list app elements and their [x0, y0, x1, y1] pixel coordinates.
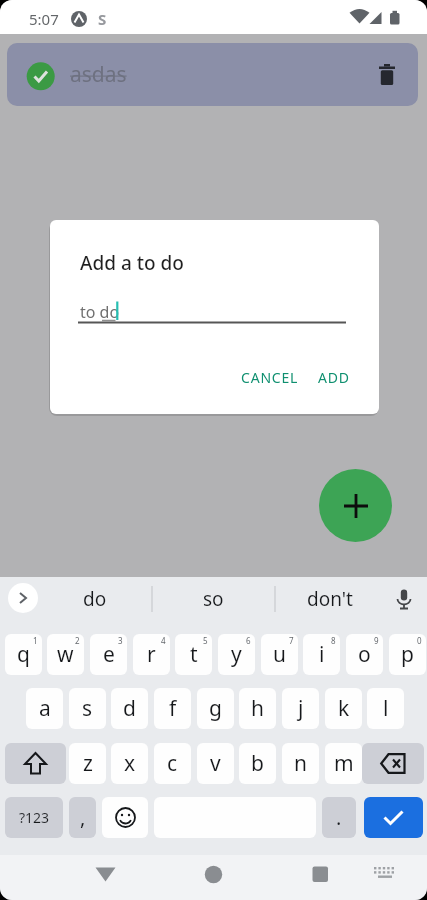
staticText: .: [336, 804, 342, 831]
button[interactable]: asdas: [7, 43, 418, 106]
staticText: 7: [289, 635, 294, 646]
staticText: t: [190, 640, 198, 669]
button[interactable]: r: [133, 634, 170, 675]
button[interactable]: u: [261, 634, 298, 675]
staticText: 9: [374, 635, 379, 646]
button[interactable]: b: [239, 743, 276, 784]
staticText: i: [319, 640, 325, 669]
staticText: d: [123, 694, 136, 723]
staticText: 2: [75, 635, 80, 646]
button[interactable]: z: [69, 743, 106, 784]
button[interactable]: [379, 64, 395, 85]
button[interactable]: e: [90, 634, 127, 675]
staticText: CANCEL: [241, 368, 299, 387]
staticText: b: [251, 749, 264, 778]
staticText: r: [147, 640, 156, 669]
staticText: q: [17, 640, 30, 669]
button[interactable]: so: [178, 577, 248, 620]
button[interactable]: [305, 860, 335, 890]
button[interactable]: [198, 860, 228, 890]
staticText: n: [294, 749, 307, 778]
staticText: x: [124, 749, 136, 778]
staticText: 4: [161, 635, 166, 646]
staticText: ,: [80, 804, 86, 831]
staticText: m: [334, 749, 354, 778]
staticText: 8: [331, 635, 336, 646]
staticText: 5: [203, 635, 208, 646]
button[interactable]: don't: [295, 577, 365, 620]
button[interactable]: d: [111, 688, 148, 729]
button[interactable]: [90, 860, 120, 890]
staticText: 1: [33, 635, 38, 646]
button[interactable]: g: [197, 688, 234, 729]
button[interactable]: o: [346, 634, 383, 675]
button[interactable]: s: [69, 688, 106, 729]
staticText: h: [251, 694, 264, 723]
button[interactable]: l: [367, 688, 404, 729]
staticText: 6: [246, 635, 251, 646]
staticText: s: [82, 694, 93, 723]
staticText: k: [338, 694, 350, 723]
button[interactable]: [5, 743, 66, 784]
button[interactable]: [364, 797, 423, 838]
button[interactable]: v: [197, 743, 234, 784]
staticText: o: [358, 640, 371, 669]
staticText: z: [83, 749, 93, 778]
button[interactable]: [102, 797, 148, 838]
staticText: v: [210, 749, 221, 778]
staticText: S: [98, 9, 107, 29]
staticText: do: [83, 586, 107, 612]
staticText: 5:07: [29, 9, 59, 29]
button[interactable]: ADD: [318, 368, 350, 387]
button[interactable]: n: [282, 743, 319, 784]
button[interactable]: q: [5, 634, 42, 675]
button[interactable]: m: [325, 743, 362, 784]
staticText: w: [57, 640, 74, 669]
staticText: u: [273, 640, 286, 669]
staticText: c: [167, 749, 178, 778]
button[interactable]: CANCEL: [241, 368, 299, 387]
staticText: ADD: [318, 368, 350, 387]
button[interactable]: h: [239, 688, 276, 729]
button[interactable]: ,: [69, 797, 96, 838]
button[interactable]: w: [47, 634, 84, 675]
staticText: so: [203, 586, 224, 612]
button[interactable]: [319, 469, 392, 542]
button[interactable]: [362, 743, 424, 784]
button[interactable]: ?123: [5, 797, 63, 838]
button[interactable]: x: [111, 743, 148, 784]
staticText: j: [298, 694, 304, 723]
staticText: l: [383, 694, 389, 723]
staticText: 0: [417, 635, 422, 646]
staticText: ?123: [19, 808, 50, 827]
button[interactable]: p: [389, 634, 426, 675]
staticText: to do: [80, 301, 120, 323]
staticText: g: [209, 694, 222, 723]
button[interactable]: k: [325, 688, 362, 729]
staticText: y: [231, 640, 242, 669]
staticText: e: [103, 640, 115, 669]
button[interactable]: [368, 860, 398, 890]
staticText: don't: [307, 586, 353, 612]
button[interactable]: i: [303, 634, 340, 675]
button[interactable]: y: [218, 634, 255, 675]
staticText: Add a to do: [80, 250, 184, 276]
button[interactable]: [8, 583, 38, 613]
button[interactable]: j: [282, 688, 319, 729]
staticText: 3: [118, 635, 123, 646]
staticText: a: [39, 694, 51, 723]
staticText: p: [401, 640, 414, 669]
staticText: asdas: [70, 60, 127, 89]
button[interactable]: c: [154, 743, 191, 784]
button[interactable]: f: [154, 688, 191, 729]
button[interactable]: t: [175, 634, 212, 675]
button[interactable]: a: [26, 688, 63, 729]
button[interactable]: do: [60, 577, 130, 620]
button[interactable]: .: [322, 797, 356, 838]
staticText: f: [169, 694, 177, 723]
